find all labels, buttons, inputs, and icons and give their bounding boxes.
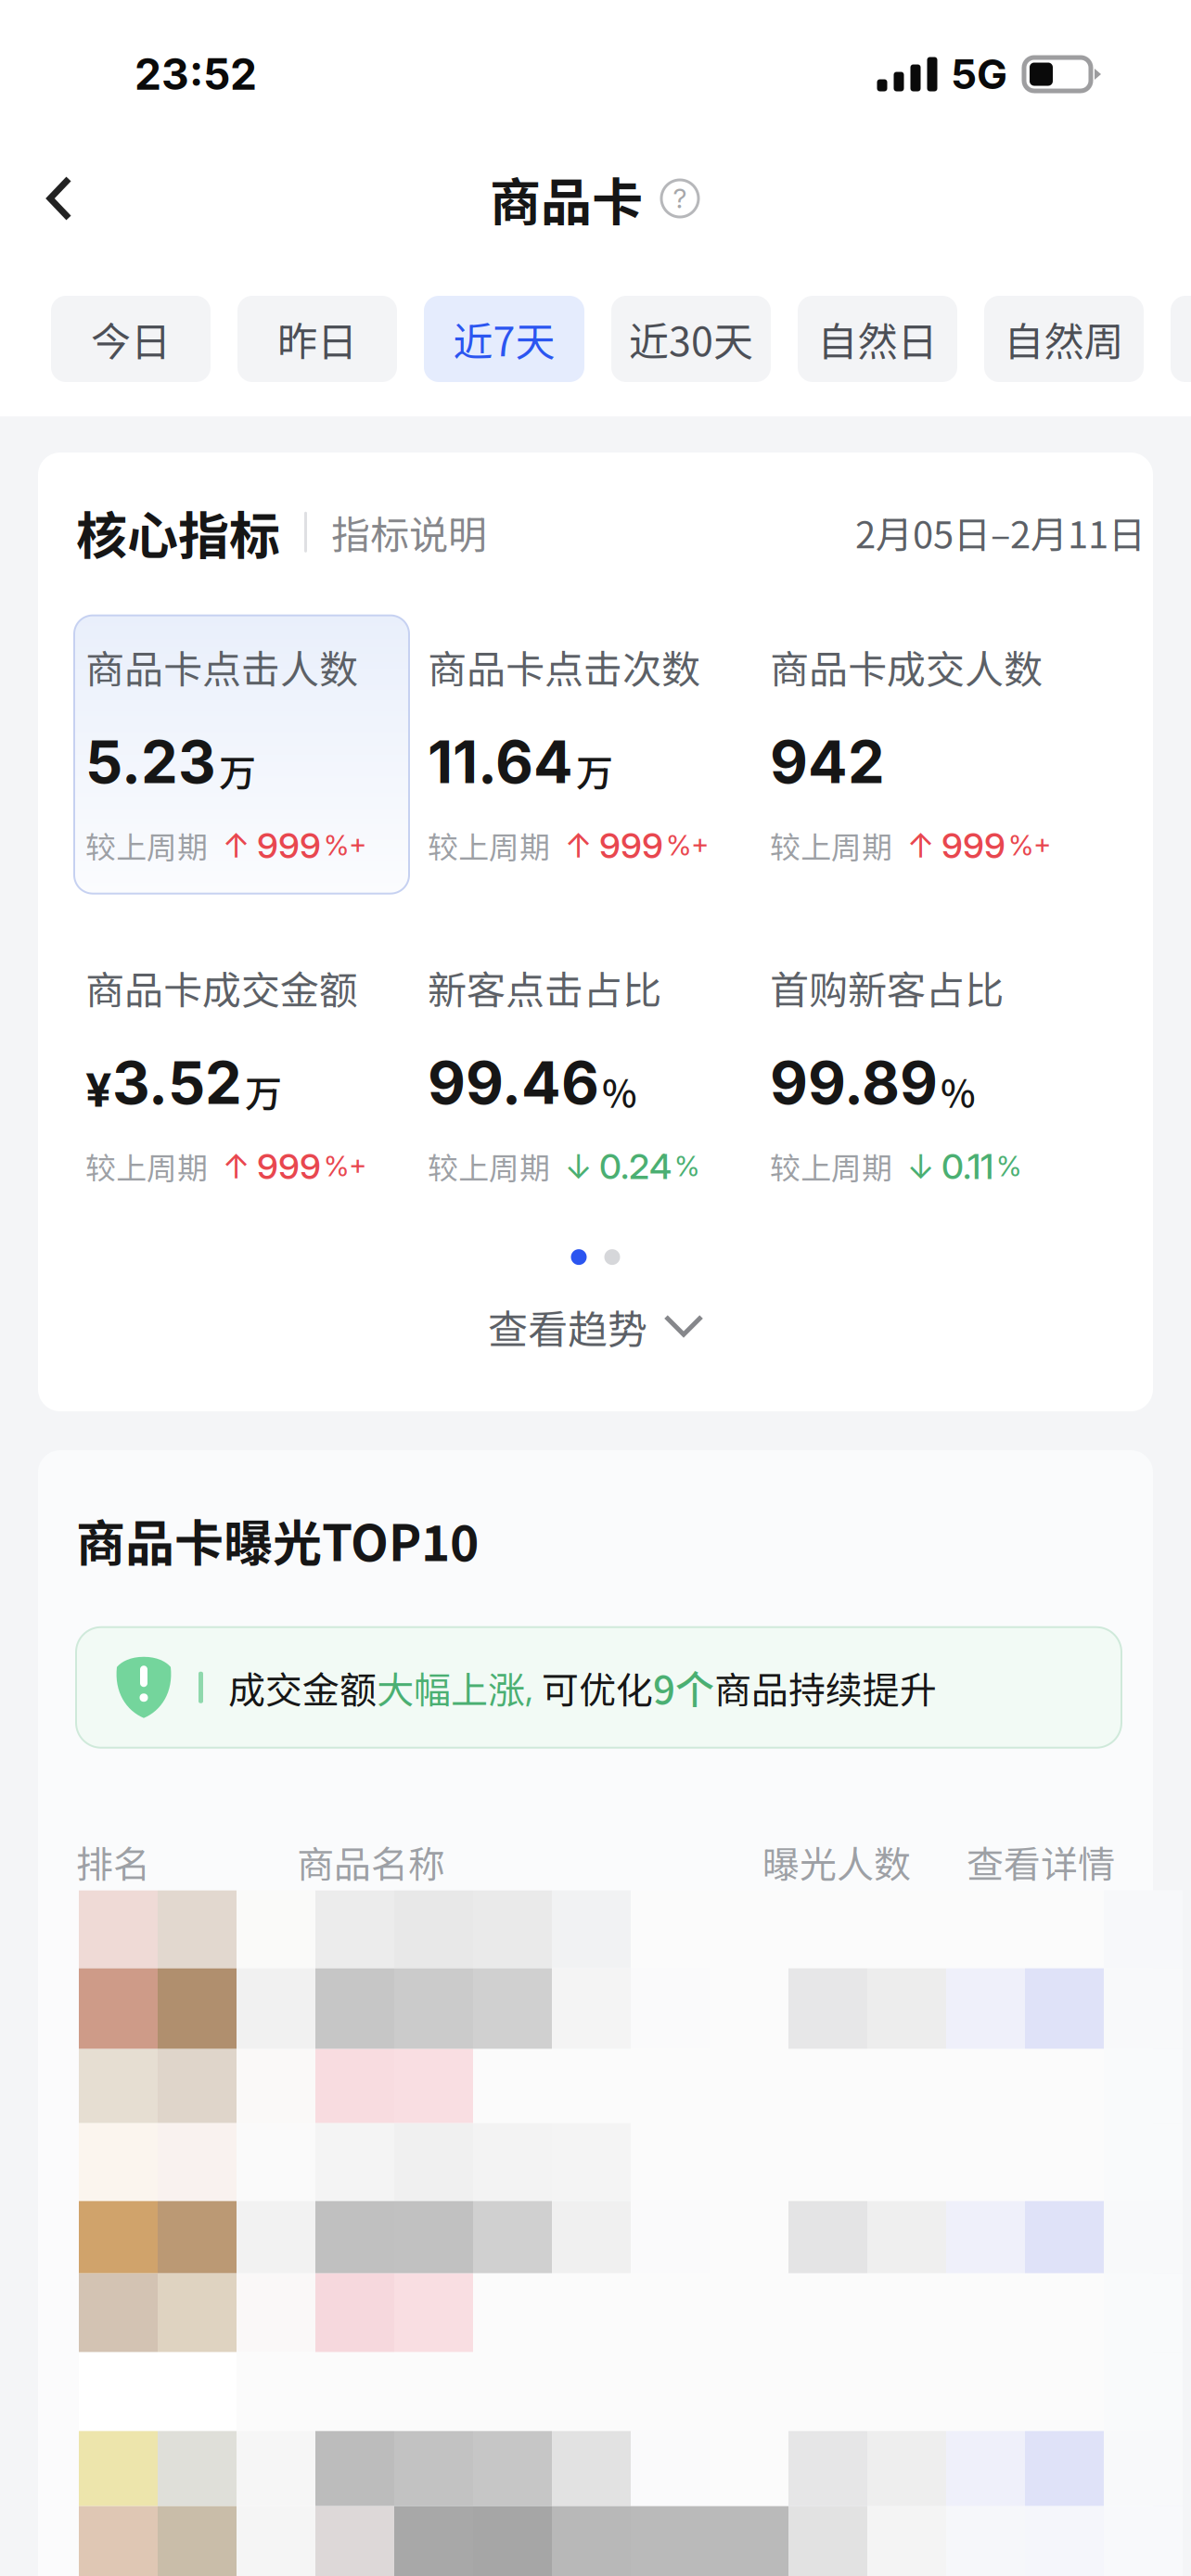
button[interactable]: 自然日: [798, 296, 957, 382]
button[interactable]: 昨日: [237, 296, 397, 382]
staticText: %: [941, 1064, 976, 1118]
staticText: 昨日: [277, 310, 357, 368]
staticText: ↑: [223, 825, 250, 866]
staticText: 999: [257, 824, 321, 867]
staticText: 3.52: [112, 1047, 242, 1118]
button[interactable]: 自然周: [984, 296, 1144, 382]
staticText: %+: [666, 828, 709, 862]
staticText: 排名: [76, 1835, 150, 1889]
button[interactable]: 近7天: [424, 296, 584, 382]
button[interactable]: Help: [659, 177, 701, 220]
staticText: 较上周期: [85, 1144, 208, 1188]
staticText: 23:52: [134, 48, 257, 100]
staticText: 万: [219, 743, 256, 797]
staticText: 99.89: [770, 1047, 938, 1118]
staticText: ¥: [85, 1062, 112, 1118]
staticText: 成交金额: [228, 1661, 377, 1714]
staticText: 万: [245, 1064, 282, 1118]
staticText: 999: [599, 824, 663, 867]
staticText: 较上周期: [770, 1144, 892, 1188]
staticText: 商品名称: [297, 1835, 445, 1889]
staticText: 999: [941, 824, 1005, 867]
staticText: 大幅上涨: [377, 1661, 525, 1714]
staticText: 今日: [91, 310, 171, 368]
staticText: 可优化: [533, 1661, 653, 1714]
staticText: ↓: [907, 1146, 934, 1186]
staticText: 自然周: [1004, 310, 1124, 368]
staticText: 自然日: [818, 310, 937, 368]
staticText: %+: [324, 828, 366, 862]
staticText: 5G: [951, 50, 1007, 99]
staticText: 0.11: [941, 1145, 993, 1187]
button[interactable]: 指标说明: [307, 496, 487, 568]
staticText: 近7天: [453, 310, 555, 368]
staticText: 较上周期: [85, 823, 208, 867]
staticText: 指标说明: [331, 504, 487, 560]
staticText: 99.46: [428, 1047, 599, 1118]
staticText: %+: [1008, 828, 1051, 862]
staticText: ,: [525, 1665, 533, 1710]
staticText: ↑: [565, 825, 592, 866]
staticText: 首购新客占比: [770, 959, 1004, 1016]
staticText: 商品持续提升: [714, 1661, 937, 1714]
staticText: 较上周期: [770, 823, 892, 867]
staticText: 11.64: [428, 727, 573, 797]
staticText: 9个: [653, 1659, 714, 1716]
staticText: 万: [576, 743, 613, 797]
staticText: ↑: [223, 1146, 250, 1186]
staticText: %: [996, 1149, 1021, 1183]
staticText: %+: [324, 1149, 366, 1183]
staticText: 查看详情: [967, 1835, 1115, 1889]
staticText: 5.23: [85, 727, 216, 797]
staticText: ?: [673, 182, 687, 215]
staticText: 商品卡点击人数: [85, 639, 358, 695]
button[interactable]: 近30天: [611, 296, 771, 382]
staticText: %: [674, 1149, 699, 1183]
staticText: 商品卡成交金额: [85, 959, 358, 1016]
staticText: 核心指标: [76, 495, 280, 569]
button[interactable]: Back: [17, 152, 102, 245]
staticText: 商品卡点击次数: [428, 639, 700, 695]
button[interactable]: 查看趋势: [38, 1283, 1153, 1370]
staticText: 较上周期: [428, 823, 550, 867]
staticText: 新客点击占比: [428, 959, 661, 1016]
staticText: ↑: [907, 825, 934, 866]
button[interactable]: 今日: [51, 296, 211, 382]
staticText: 查看趋势: [488, 1298, 647, 1356]
staticText: 商品卡成交人数: [770, 639, 1043, 695]
staticText: 较上周期: [428, 1144, 550, 1188]
staticText: 商品卡曝光TOP10: [76, 1504, 479, 1575]
staticText: 近30天: [629, 310, 753, 368]
staticText: 0.24: [599, 1145, 672, 1187]
staticText: %: [602, 1064, 637, 1118]
staticText: 2月05日–2月11日: [855, 505, 1146, 559]
staticText: 商品卡: [490, 162, 643, 235]
staticText: ↓: [565, 1146, 592, 1186]
staticText: 942: [770, 727, 885, 797]
staticText: 曝光人数: [762, 1835, 911, 1889]
staticText: 999: [257, 1145, 321, 1187]
